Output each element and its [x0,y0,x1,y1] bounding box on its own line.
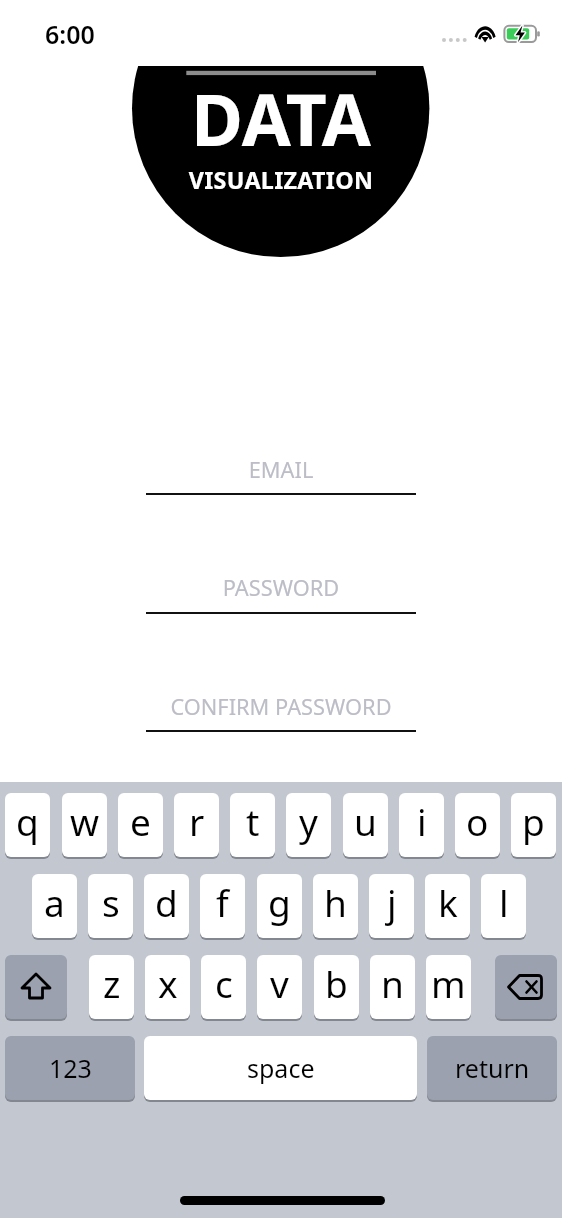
staticText: b [325,958,348,1008]
staticText: r [189,796,205,846]
button[interactable]: o [455,793,500,857]
staticText: d [155,877,178,927]
button[interactable]: z [89,955,134,1019]
button[interactable]: r [174,793,219,857]
button[interactable]: a [32,874,77,938]
staticText: CONFIRM PASSWORD [11,692,551,722]
staticText: c [215,958,233,1008]
button[interactable]: 123 [5,1036,135,1100]
button[interactable]: g [257,874,302,938]
button[interactable]: w [62,793,107,857]
staticText: g [268,877,291,927]
staticText: 6:00 [45,17,95,51]
button[interactable]: y [286,793,331,857]
staticText: e [130,796,151,846]
staticText: y [299,796,318,846]
button[interactable]: h [313,874,358,938]
button[interactable]: s [88,874,133,938]
button[interactable]: i [399,793,444,857]
staticText: s [102,877,120,927]
staticText: a [44,877,65,927]
button[interactable]: u [343,793,388,857]
staticText: k [438,877,458,927]
button[interactable]: t [230,793,275,857]
button[interactable]: d [144,874,189,938]
button[interactable]: j [369,874,414,938]
staticText: f [216,877,229,927]
button[interactable] [146,440,416,497]
button[interactable]: b [314,955,359,1019]
staticText: 123 [49,1051,92,1085]
button[interactable] [146,558,416,615]
button[interactable]: p [511,793,556,857]
button[interactable]: q [5,793,50,857]
staticText: p [522,796,545,846]
button[interactable]: e [118,793,163,857]
button[interactable]: space [144,1036,417,1100]
button[interactable]: n [370,955,415,1019]
staticText: j [387,877,397,927]
button[interactable]: Delete [495,955,557,1019]
staticText: v [270,958,289,1008]
button[interactable]: m [426,955,471,1019]
staticText: i [417,796,427,846]
staticText: q [16,796,39,846]
staticText: return [455,1051,530,1085]
staticText: h [324,877,347,927]
staticText: w [70,796,100,846]
staticText: VISUALIZATION [0,164,562,196]
staticText: l [499,877,509,927]
button[interactable]: l [481,874,526,938]
staticText: o [466,796,489,846]
button[interactable]: Shift [5,955,67,1019]
staticText: z [103,958,121,1008]
staticText: DATA [0,70,562,167]
staticText: t [246,796,260,846]
staticText: space [247,1051,315,1085]
staticText: PASSWORD [11,573,551,603]
button[interactable]: k [425,874,470,938]
staticText: u [354,796,377,846]
staticText: n [381,958,404,1008]
staticText: x [158,958,178,1008]
button[interactable]: return [427,1036,557,1100]
button[interactable]: v [257,955,302,1019]
button[interactable]: c [201,955,246,1019]
button[interactable]: f [200,874,245,938]
staticText: EMAIL [11,455,551,485]
button[interactable]: x [145,955,190,1019]
button[interactable] [146,677,416,734]
staticText: m [431,958,466,1008]
